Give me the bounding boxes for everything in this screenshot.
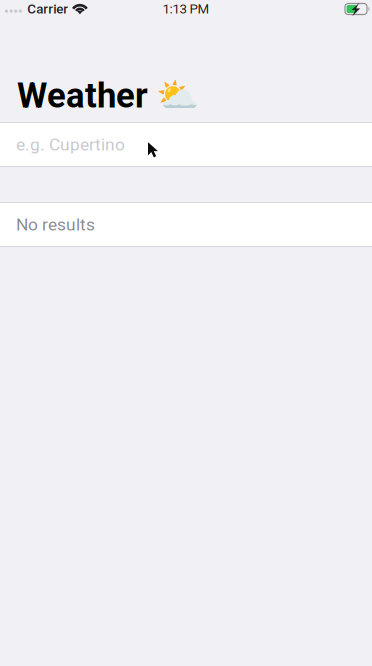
button[interactable]: e.g. Cupertino [0,123,372,166]
staticText: e.g. Cupertino [16,134,125,155]
staticText: ⛅ [156,75,199,115]
staticText: Carrier [27,1,68,17]
staticText: 1:13 PM [162,1,209,17]
staticText: No results [16,214,95,235]
staticText: Weather [17,75,148,116]
